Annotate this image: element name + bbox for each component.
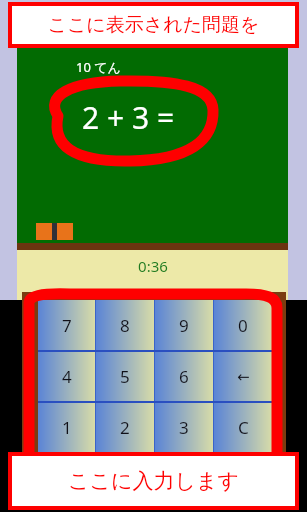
button[interactable]: ここに表示された問題を xyxy=(12,6,295,44)
staticText: 0 xyxy=(238,314,248,337)
button[interactable]: 2 xyxy=(96,403,154,452)
staticText: 7 xyxy=(62,314,72,337)
staticText: 5 xyxy=(120,365,130,388)
staticText: 3 xyxy=(179,416,189,439)
staticText: 2 xyxy=(120,416,130,439)
staticText: 2 + 3 = xyxy=(82,97,175,138)
button[interactable]: 6 xyxy=(155,352,213,401)
button[interactable]: 9 xyxy=(155,300,213,350)
staticText: 0:36 xyxy=(138,256,168,276)
staticText: C xyxy=(238,416,249,439)
button[interactable]: 7 xyxy=(38,300,95,350)
staticText: 8 xyxy=(120,314,130,337)
staticText: 9 xyxy=(179,314,189,337)
button[interactable]: 8 xyxy=(96,300,154,350)
button[interactable]: 0 xyxy=(214,300,272,350)
staticText: ここに入力します xyxy=(68,468,239,494)
staticText: 1 xyxy=(62,416,72,439)
staticText: 4 xyxy=(62,365,72,388)
staticText: 6 xyxy=(179,365,189,388)
staticText: 10 てん xyxy=(76,58,121,76)
staticText: ここに表示された問題を xyxy=(47,13,260,37)
button[interactable]: 1 xyxy=(38,403,95,452)
button[interactable]: 5 xyxy=(96,352,154,401)
button[interactable]: Clear xyxy=(214,403,272,452)
button[interactable]: ここに入力します xyxy=(12,456,295,506)
button[interactable]: 4 xyxy=(38,352,95,401)
button[interactable]: 3 xyxy=(155,403,213,452)
button[interactable]: Backspace xyxy=(214,352,272,401)
staticText: ← xyxy=(237,368,250,385)
